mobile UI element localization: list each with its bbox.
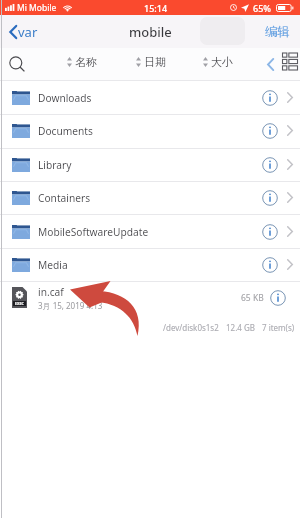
button[interactable]: Info — [259, 154, 281, 176]
button[interactable]: Info — [259, 87, 281, 109]
staticText: EXEC — [15, 301, 24, 306]
button[interactable]: Documents — [0, 114, 300, 147]
button[interactable]: Info — [259, 120, 281, 142]
button[interactable]: List view — [280, 50, 299, 73]
button[interactable]: Collapse — [263, 54, 277, 74]
staticText: 12.4 GB — [226, 322, 255, 333]
staticText: 编辑 — [265, 24, 290, 40]
staticText: Downloads — [38, 91, 92, 105]
staticText: 大小 — [211, 55, 233, 69]
staticText: mobile — [129, 23, 172, 41]
staticText: 3月 15, 2019 4:13 — [38, 300, 103, 311]
button[interactable]: Info — [267, 287, 289, 309]
button[interactable]: Info — [259, 254, 281, 276]
staticText: 65% — [253, 2, 271, 14]
staticText: 名称 — [75, 55, 97, 69]
button[interactable]: Containers — [0, 181, 300, 214]
staticText: Containers — [38, 191, 91, 205]
button[interactable]: 名称 — [65, 52, 99, 72]
button[interactable]: Downloads — [0, 81, 300, 114]
staticText: Media — [38, 258, 68, 272]
staticText: 日期 — [144, 55, 166, 69]
button[interactable]: Info — [259, 221, 281, 243]
staticText: MobileSoftwareUpdate — [38, 225, 149, 239]
staticText: Library — [38, 158, 72, 172]
button[interactable]: Media — [0, 248, 300, 281]
button[interactable]: var — [5, 19, 44, 45]
button[interactable]: EXEC — [0, 281, 300, 314]
staticText: var — [18, 23, 38, 41]
button[interactable]: Search — [6, 53, 27, 74]
button[interactable]: MobileSoftwareUpdate — [0, 215, 300, 248]
button[interactable]: 大小 — [201, 52, 235, 72]
staticText: Documents — [38, 124, 93, 138]
button[interactable]: Library — [0, 148, 300, 181]
staticText: in.caf — [38, 285, 64, 299]
staticText: 65 KB — [241, 292, 264, 304]
button[interactable]: 日期 — [134, 52, 168, 72]
staticText: /dev/disk0s1s2 — [163, 322, 219, 333]
staticText: 15:14 — [144, 2, 168, 14]
staticText: 7 item(s) — [262, 322, 295, 333]
staticText: Mi Mobile — [17, 2, 57, 14]
button[interactable]: Info — [259, 187, 281, 209]
button[interactable]: 编辑 — [263, 19, 292, 45]
